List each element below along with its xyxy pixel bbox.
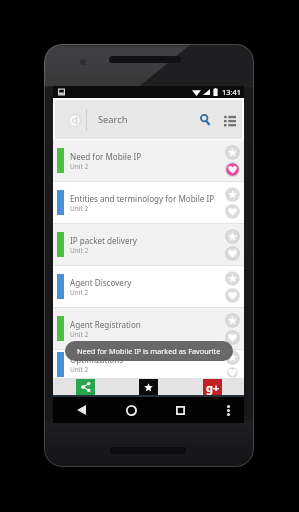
staticText: g+ <box>206 380 220 395</box>
button[interactable]: Need for Mobile IP <box>53 140 244 182</box>
staticText: Agent Registration <box>70 319 141 330</box>
button[interactable]: Favourite <box>225 246 240 261</box>
staticText: Need for Mobile IP <box>70 151 142 162</box>
button[interactable]: Favourite <box>225 204 240 219</box>
button[interactable]: Back <box>66 112 82 128</box>
staticText: Unit 2 <box>70 365 89 374</box>
button[interactable]: Agent Discovery <box>53 266 244 308</box>
staticText: Entities and terminology for Mobile IP <box>70 193 215 204</box>
button[interactable]: Favourite <box>225 288 240 303</box>
staticText: Unit 2 <box>70 330 89 339</box>
staticText: Search <box>98 113 128 126</box>
staticText: Optimizations <box>70 354 124 365</box>
button[interactable]: List view <box>221 111 239 129</box>
button[interactable]: Star <box>225 187 240 202</box>
button[interactable]: Star <box>225 229 240 244</box>
staticText: Need for Mobile IP is marked as Favourit… <box>77 346 221 356</box>
button[interactable]: Back <box>71 400 91 420</box>
button[interactable]: Star <box>225 145 240 160</box>
button[interactable]: Favourite <box>225 367 240 378</box>
staticText: Agent Discovery <box>70 277 132 288</box>
staticText: Unit 2 <box>70 162 89 171</box>
staticText: 13:41 <box>222 87 241 97</box>
button[interactable]: Home <box>121 400 141 420</box>
staticText: Unit 2 <box>70 204 89 213</box>
button[interactable]: Optimizations <box>53 350 244 379</box>
button[interactable]: More options <box>220 402 236 418</box>
button[interactable]: Entities and terminology for Mobile IP <box>53 182 244 224</box>
staticText: IP packet delivery <box>70 235 137 246</box>
button[interactable]: Favourite <box>225 162 240 177</box>
button[interactable]: Favourite <box>225 330 240 345</box>
button[interactable]: IP packet delivery <box>53 224 244 266</box>
button[interactable]: Search <box>196 111 214 129</box>
button[interactable]: Google Plus <box>203 379 222 395</box>
button[interactable]: Star <box>225 350 240 365</box>
button[interactable]: Agent Registration <box>53 308 244 350</box>
button[interactable]: Star <box>225 313 240 328</box>
button[interactable]: Share <box>76 379 95 395</box>
button[interactable]: Favourites <box>139 379 158 395</box>
staticText: Unit 2 <box>70 288 89 297</box>
staticText: Unit 2 <box>70 246 89 255</box>
button[interactable]: Recents <box>170 400 190 420</box>
button[interactable]: Star <box>225 271 240 286</box>
